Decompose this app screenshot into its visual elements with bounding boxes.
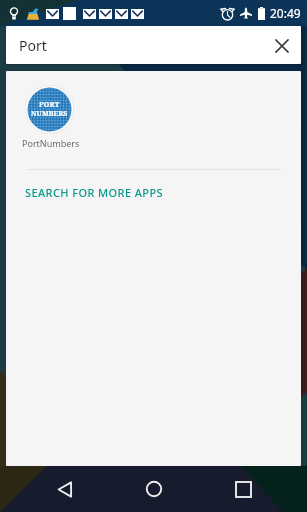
staticText: PORT — [39, 100, 60, 110]
button[interactable]: Port — [6, 26, 301, 64]
staticText: 20:49 — [270, 5, 301, 21]
button[interactable]: Clear search — [264, 28, 300, 64]
staticText: SEARCH FOR MORE APPS — [25, 185, 163, 200]
staticText: NUMBERS — [31, 109, 68, 119]
button[interactable]: SEARCH FOR MORE APPS — [6, 170, 301, 214]
staticText: PortNumbers — [22, 137, 80, 149]
button[interactable]: Home — [131, 466, 177, 512]
button[interactable]: Back — [42, 466, 88, 512]
button[interactable]: Recent apps — [220, 466, 266, 512]
staticText: Port — [19, 36, 47, 55]
